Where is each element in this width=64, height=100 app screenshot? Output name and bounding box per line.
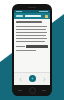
button[interactable]: More options [45, 15, 48, 18]
button[interactable]: Previous [17, 76, 23, 82]
button[interactable]: Next [41, 76, 47, 82]
button[interactable]: Play [29, 75, 36, 82]
button[interactable]: Home [29, 87, 36, 94]
button[interactable]: More options [14, 13, 50, 19]
button[interactable] [26, 45, 48, 48]
